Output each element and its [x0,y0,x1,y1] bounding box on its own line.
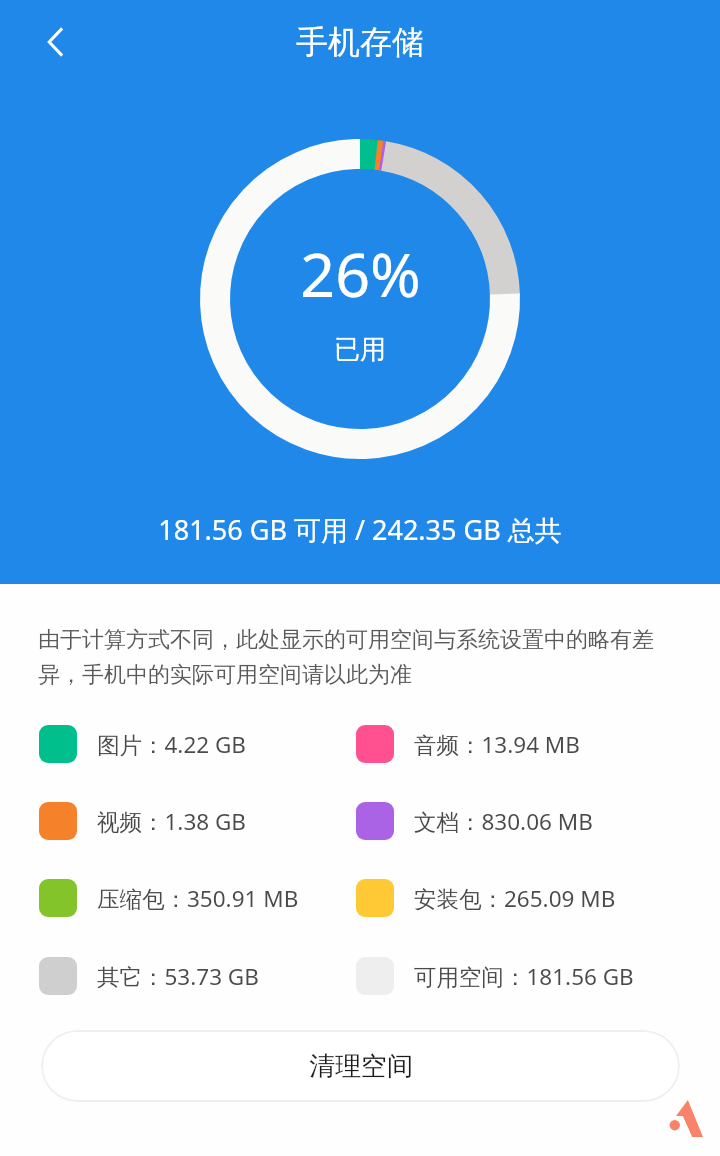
button[interactable]: 清理空间 [41,1030,680,1102]
staticText: 其它：53.73 GB [97,961,259,992]
staticText: 由于计算方式不同，此处显示的可用空间与系统设置中的略有差异，手机中的实际可用空间… [38,626,682,689]
staticText: 压缩包：350.91 MB [97,883,299,914]
staticText: 清理空间 [309,1050,413,1083]
staticText: 安装包：265.09 MB [414,883,616,914]
staticText: 已用 [334,333,386,366]
staticText: 图片：4.22 GB [97,729,246,760]
button[interactable]: Back [27,13,85,71]
staticText: 手机存储 [296,22,424,62]
staticText: 26% [300,232,421,315]
staticText: 视频：1.38 GB [97,806,246,837]
staticText: 可用空间：181.56 GB [414,961,634,992]
staticText: 文档：830.06 MB [414,806,593,837]
staticText: 181.56 GB 可用 / 242.35 GB 总共 [158,511,562,548]
staticText: 音频：13.94 MB [414,729,580,760]
